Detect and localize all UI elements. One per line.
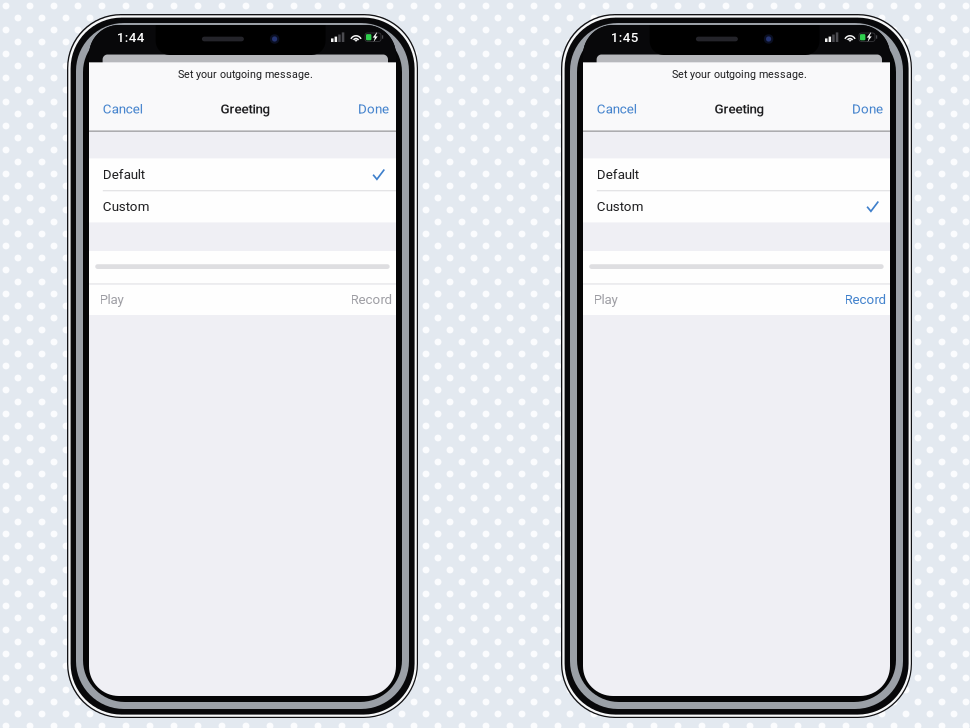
- staticText: Default: [597, 167, 639, 182]
- button[interactable]: Play: [89, 284, 189, 315]
- button[interactable]: Custom: [89, 190, 396, 222]
- staticText: Done: [852, 101, 883, 117]
- staticText: Custom: [103, 199, 150, 214]
- staticText: Record: [844, 291, 886, 307]
- staticText: Set your outgoing message.: [178, 68, 313, 80]
- staticText: 1:45: [611, 30, 639, 45]
- button[interactable]: Done: [797, 93, 890, 124]
- button[interactable]: Default: [89, 158, 396, 190]
- staticText: Play: [593, 291, 617, 307]
- staticText: Record: [350, 291, 392, 307]
- button[interactable]: Custom: [583, 190, 890, 222]
- button[interactable]: Default: [583, 158, 890, 190]
- button[interactable]: Cancel: [583, 93, 683, 124]
- button[interactable]: Record: [796, 284, 890, 315]
- staticText: Cancel: [103, 101, 143, 117]
- button[interactable]: Cancel: [89, 93, 189, 124]
- staticText: Greeting: [220, 101, 270, 117]
- staticText: Greeting: [714, 101, 764, 117]
- staticText: Custom: [597, 199, 644, 214]
- staticText: 1:44: [117, 30, 145, 45]
- button[interactable]: Play: [583, 284, 683, 315]
- button[interactable]: Done: [303, 93, 396, 124]
- button[interactable]: Record: [302, 284, 396, 315]
- staticText: Set your outgoing message.: [672, 68, 807, 80]
- staticText: Play: [99, 291, 123, 307]
- staticText: Default: [103, 167, 145, 182]
- staticText: Cancel: [597, 101, 637, 117]
- staticText: Done: [358, 101, 389, 117]
